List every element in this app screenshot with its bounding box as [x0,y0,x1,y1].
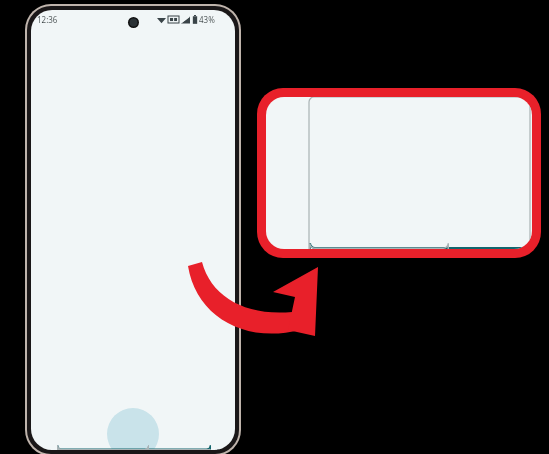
staticText: 12:36 [37,14,58,25]
staticText: 43% [199,14,215,25]
